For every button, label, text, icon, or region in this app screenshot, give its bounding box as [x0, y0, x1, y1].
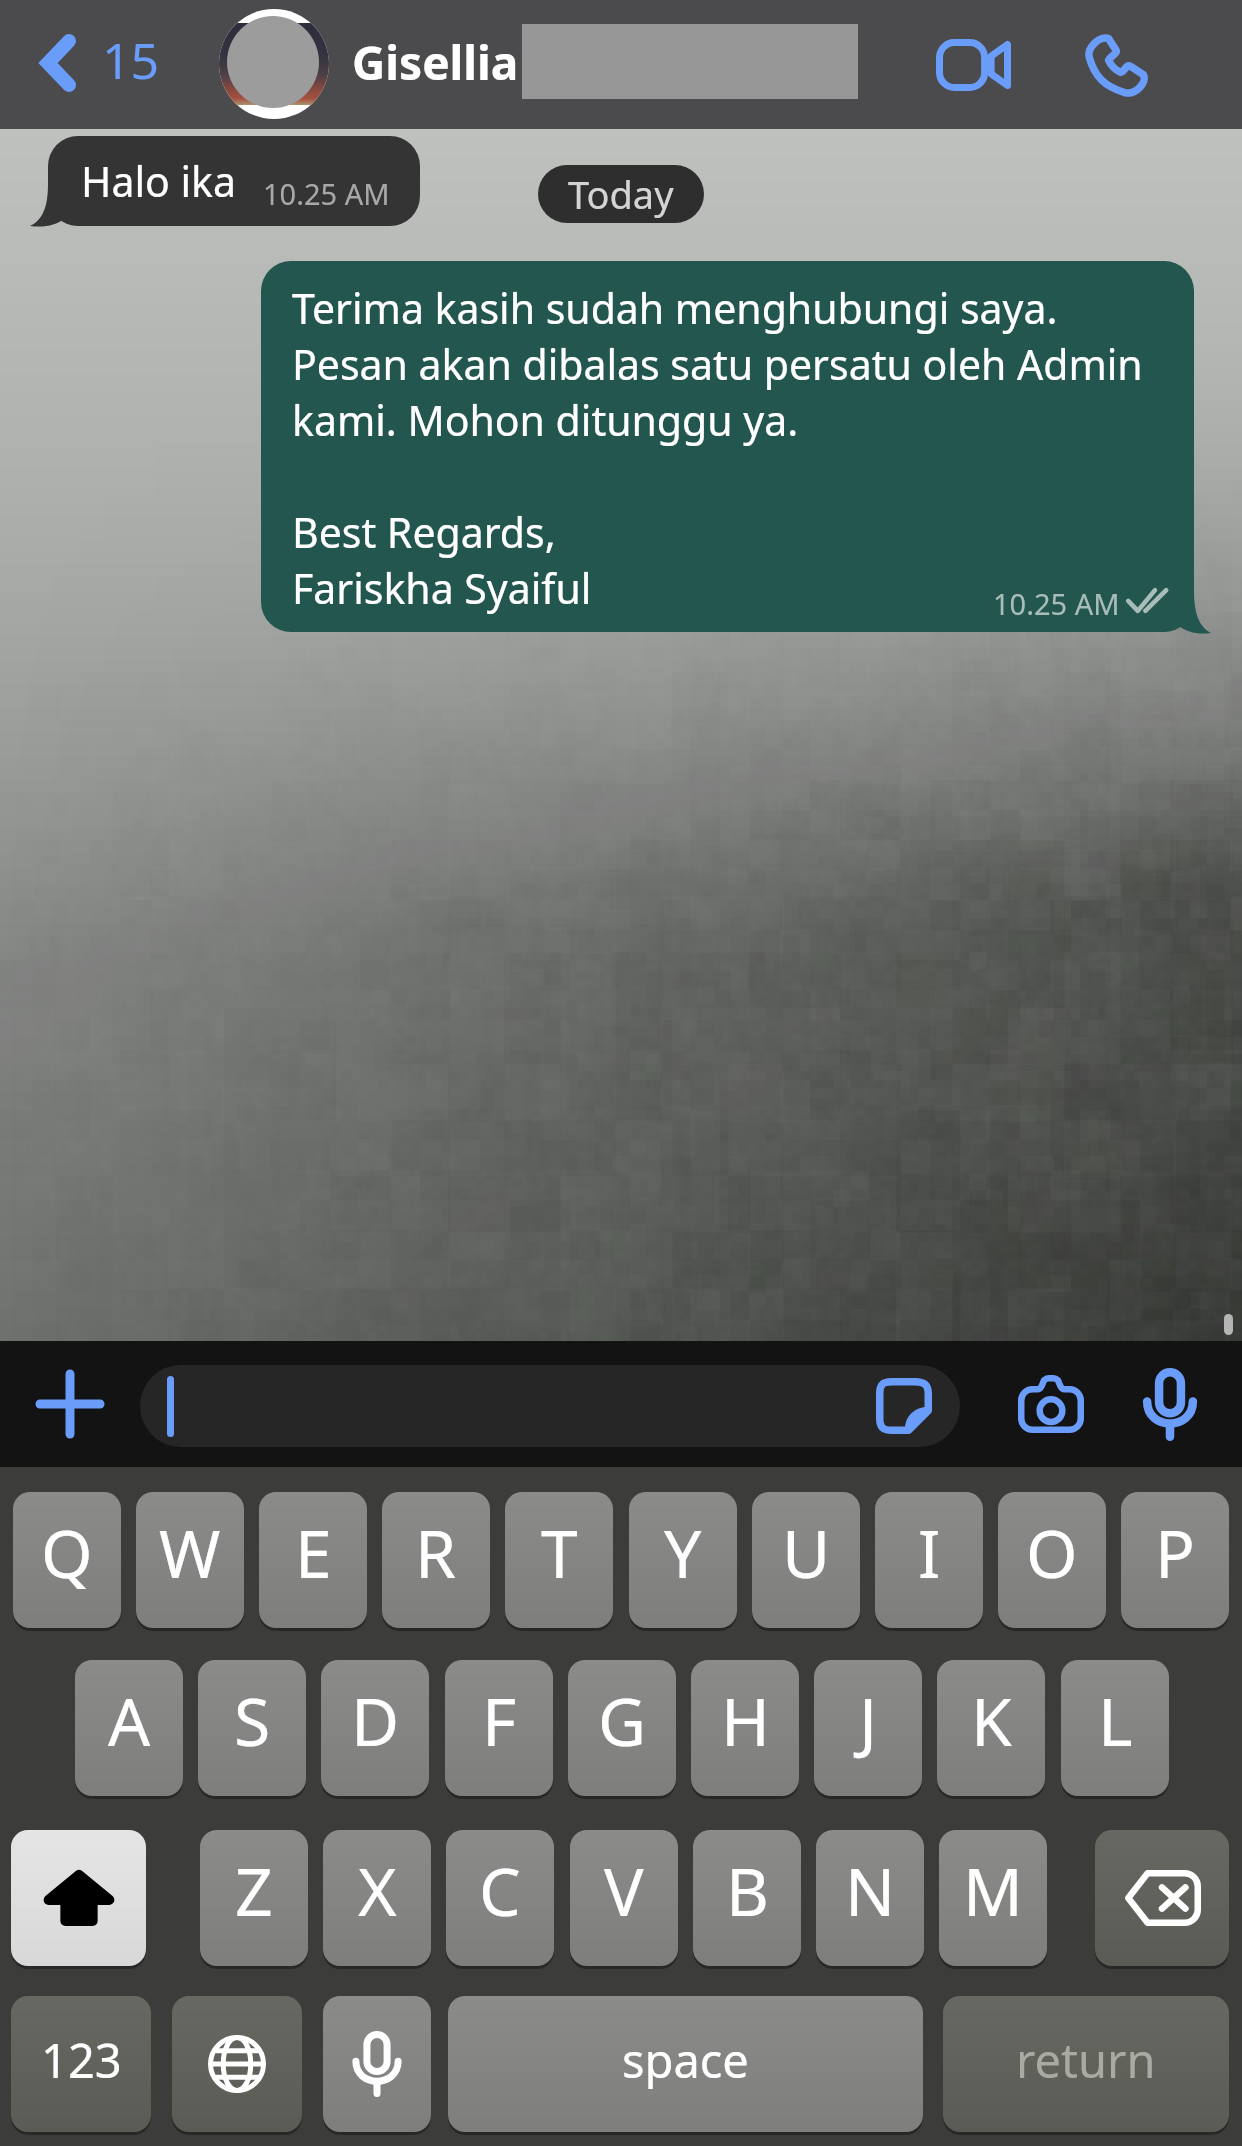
staticText: J	[859, 1675, 878, 1765]
staticText: 10.25 AM	[993, 584, 1120, 623]
staticText: Y	[664, 1507, 702, 1597]
button[interactable]: L	[1061, 1660, 1169, 1796]
button[interactable]: K	[937, 1660, 1045, 1796]
button[interactable]: T	[505, 1492, 613, 1628]
button[interactable]: Attach	[10, 1341, 130, 1467]
button[interactable]: space	[448, 1996, 923, 2132]
button[interactable]: D	[321, 1660, 429, 1796]
staticText: P	[1155, 1507, 1195, 1597]
staticText: M	[963, 1845, 1023, 1935]
staticText: Q	[41, 1507, 93, 1597]
staticText: 123	[41, 2028, 122, 2092]
button[interactable]: Y	[629, 1492, 737, 1628]
button[interactable]: F	[445, 1660, 553, 1796]
button[interactable]: Z	[200, 1830, 308, 1966]
staticText: I	[918, 1507, 941, 1597]
staticText: Z	[235, 1845, 273, 1935]
staticText: C	[479, 1845, 521, 1935]
button[interactable]: B	[693, 1830, 801, 1966]
button[interactable]: Today	[538, 165, 704, 223]
button[interactable]: C	[446, 1830, 554, 1966]
staticText: U	[782, 1507, 831, 1597]
button[interactable]: X	[323, 1830, 431, 1966]
staticText: kami. Mohon ditunggu ya.	[292, 390, 799, 448]
staticText: H	[721, 1675, 770, 1765]
staticText: O	[1026, 1507, 1078, 1597]
button[interactable]: I	[875, 1492, 983, 1628]
staticText: S	[234, 1675, 271, 1765]
staticText: D	[351, 1675, 400, 1765]
button[interactable]: Dictate	[323, 1996, 431, 2132]
button[interactable]: Contact photo	[219, 9, 329, 119]
button[interactable]: Record voice message	[1112, 1341, 1228, 1467]
button[interactable]: E	[259, 1492, 367, 1628]
staticText: space	[622, 2028, 749, 2092]
staticText: 15	[102, 26, 160, 94]
button[interactable]: Halo ika	[48, 136, 420, 226]
staticText: Fariskha Syaiful	[292, 558, 592, 616]
staticText: K	[971, 1675, 1012, 1765]
staticText: L	[1098, 1675, 1133, 1765]
button[interactable]: Back to chats	[18, 0, 178, 129]
button[interactable]: Voice call	[1056, 0, 1176, 129]
button[interactable]: Camera	[991, 1341, 1111, 1467]
staticText: return	[1016, 2028, 1156, 2092]
button[interactable]: O	[998, 1492, 1106, 1628]
staticText: G	[598, 1675, 647, 1765]
staticText: X	[358, 1845, 397, 1935]
staticText: V	[604, 1845, 644, 1935]
button[interactable]: P	[1121, 1492, 1229, 1628]
button[interactable]: Shift	[11, 1830, 146, 1966]
staticText: F	[482, 1675, 517, 1765]
staticText: T	[541, 1507, 578, 1597]
staticText: Best Regards,	[292, 502, 556, 560]
button[interactable]: W	[136, 1492, 244, 1628]
button[interactable]: Q	[13, 1492, 121, 1628]
button[interactable]: N	[816, 1830, 924, 1966]
staticText: R	[415, 1507, 457, 1597]
staticText: E	[295, 1507, 332, 1597]
staticText: Pesan akan dibalas satu persatu oleh Adm…	[292, 334, 1143, 392]
staticText: Halo ika	[81, 153, 236, 209]
button[interactable]: Terima kasih sudah menghubungi saya.	[261, 261, 1194, 632]
staticText: Today	[568, 168, 674, 220]
button[interactable]: return	[943, 1996, 1229, 2132]
button[interactable]: 123	[11, 1996, 151, 2132]
button[interactable]: H	[691, 1660, 799, 1796]
button[interactable]: Change keyboard language	[172, 1996, 302, 2132]
button[interactable]: R	[382, 1492, 490, 1628]
button[interactable]: A	[75, 1660, 183, 1796]
staticText: N	[845, 1845, 896, 1935]
button[interactable]: J	[814, 1660, 922, 1796]
staticText: A	[108, 1675, 151, 1765]
button[interactable]: Video call	[913, 0, 1033, 129]
staticText: W	[159, 1507, 221, 1597]
button[interactable]: U	[752, 1492, 860, 1628]
staticText: B	[726, 1845, 769, 1935]
button[interactable]: V	[570, 1830, 678, 1966]
button[interactable]: M	[939, 1830, 1047, 1966]
staticText: Gisellia	[352, 31, 519, 94]
staticText: 10.25 AM	[263, 174, 390, 213]
staticText: Terima kasih sudah menghubungi saya.	[292, 278, 1058, 336]
button[interactable]: G	[568, 1660, 676, 1796]
button[interactable]	[140, 1365, 960, 1447]
button[interactable]: Backspace	[1095, 1830, 1229, 1966]
button[interactable]: S	[198, 1660, 306, 1796]
